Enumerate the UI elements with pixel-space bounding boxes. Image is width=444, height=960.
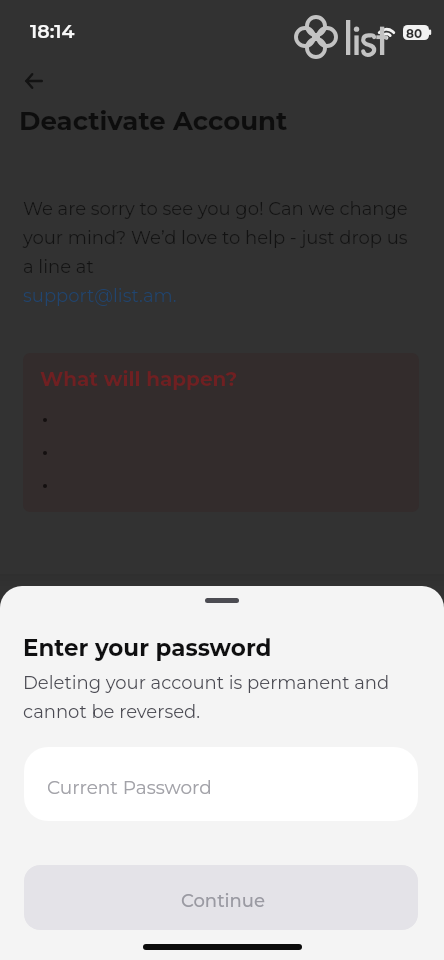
staticText: 80 [406, 26, 423, 41]
button[interactable]: Current Password [24, 747, 418, 821]
staticText: Continue [181, 890, 266, 912]
staticText: 18:14 [30, 20, 75, 43]
staticText: Current Password [47, 776, 212, 799]
button[interactable]: Back [17, 64, 50, 97]
staticText: Enter your password [23, 634, 272, 662]
button[interactable]: Continue [24, 865, 418, 930]
staticText: support@list.am. [23, 285, 177, 307]
staticText: Deleting your account is permanent and c… [23, 672, 390, 723]
staticText: We are sorry to see you go! Can we chang… [23, 198, 408, 278]
staticText: Deactivate Account [19, 105, 288, 137]
staticText: What will happen? [40, 367, 238, 391]
